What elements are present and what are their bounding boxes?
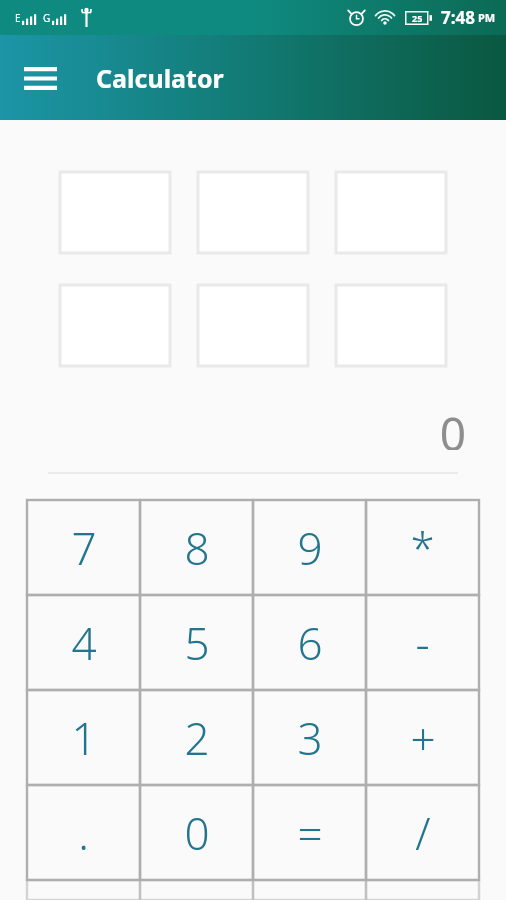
button[interactable]: +	[366, 690, 479, 785]
button[interactable]: 6	[253, 595, 366, 690]
staticText: 0	[439, 402, 466, 450]
button[interactable]	[27, 880, 140, 900]
button[interactable]: Open navigation drawer	[12, 50, 68, 106]
button[interactable]: 4	[27, 595, 140, 690]
staticText: /	[415, 803, 431, 863]
staticText: 3	[297, 708, 323, 768]
button[interactable]	[198, 285, 308, 366]
button[interactable]	[336, 172, 446, 253]
staticText: 7	[71, 518, 97, 578]
staticText: 25	[412, 12, 423, 24]
staticText: 5	[184, 613, 210, 673]
button[interactable]	[253, 880, 366, 900]
staticText: 4	[71, 613, 97, 673]
staticText: .	[78, 803, 89, 863]
staticText: *	[410, 518, 435, 578]
staticText: +	[410, 708, 436, 768]
button[interactable]	[366, 880, 479, 900]
staticText: 6	[297, 613, 323, 673]
button[interactable]: 3	[253, 690, 366, 785]
button[interactable]: /	[366, 785, 479, 880]
staticText: =	[297, 803, 323, 863]
staticText: 1	[71, 708, 97, 768]
button[interactable]	[336, 285, 446, 366]
button[interactable]: -	[366, 595, 479, 690]
button[interactable]: 2	[140, 690, 253, 785]
button[interactable]: 8	[140, 500, 253, 595]
staticText: 8	[184, 518, 210, 578]
button[interactable]: 1	[27, 690, 140, 785]
button[interactable]	[60, 285, 170, 366]
button[interactable]	[60, 172, 170, 253]
staticText: 7:48	[441, 6, 475, 29]
staticText: 2	[184, 708, 210, 768]
staticText: PM	[478, 10, 496, 25]
staticText: G	[43, 11, 51, 25]
button[interactable]: =	[253, 785, 366, 880]
staticText: Calculator	[96, 61, 224, 95]
button[interactable]: 0	[140, 785, 253, 880]
staticText: -	[415, 613, 430, 673]
button[interactable]: 9	[253, 500, 366, 595]
button[interactable]: .	[27, 785, 140, 880]
button[interactable]: 7	[27, 500, 140, 595]
button[interactable]	[198, 172, 308, 253]
staticText: 9	[297, 518, 323, 578]
button[interactable]: *	[366, 500, 479, 595]
staticText: 0	[184, 803, 210, 863]
button[interactable]	[140, 880, 253, 900]
button[interactable]: 5	[140, 595, 253, 690]
staticText: E	[15, 11, 21, 25]
